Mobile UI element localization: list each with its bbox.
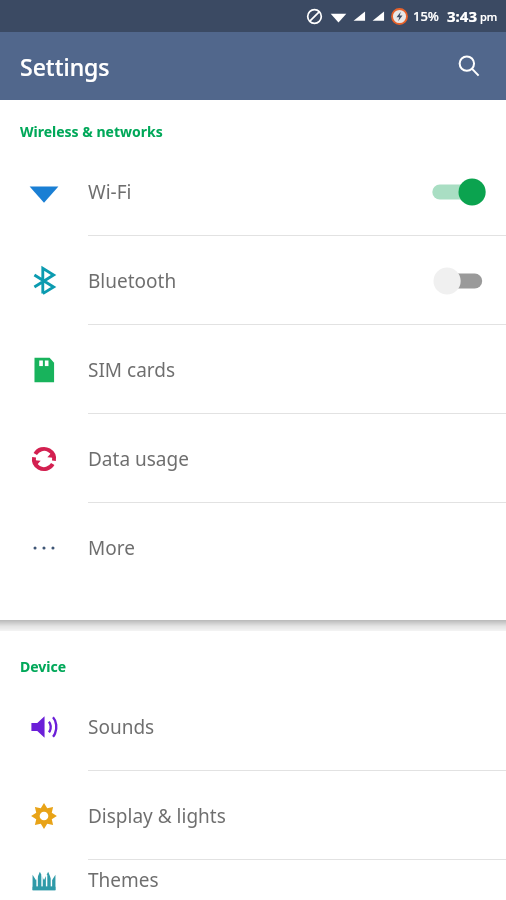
staticText: Sounds <box>88 714 155 740</box>
staticText: Data usage <box>88 446 189 472</box>
button[interactable]: Display & lights <box>0 771 506 860</box>
staticText: Settings <box>20 51 110 82</box>
staticText: 15% <box>413 7 439 25</box>
button[interactable]: On <box>430 175 488 209</box>
staticText: Display & lights <box>88 803 226 829</box>
button[interactable]: Search <box>446 43 492 89</box>
staticText: Wi-Fi <box>88 179 132 205</box>
button[interactable]: Themes <box>0 860 506 900</box>
staticText: 3:43 <box>447 6 477 26</box>
button[interactable]: Wi-Fi <box>0 147 506 236</box>
button[interactable]: SIM cards <box>0 325 506 414</box>
button[interactable]: Data usage <box>0 414 506 503</box>
button[interactable]: Off <box>430 264 488 298</box>
button[interactable]: More <box>0 503 506 592</box>
staticText: SIM cards <box>88 357 176 383</box>
staticText: Bluetooth <box>88 268 177 294</box>
button[interactable]: Bluetooth <box>0 236 506 325</box>
staticText: pm <box>480 9 498 24</box>
staticText: Themes <box>88 867 159 893</box>
staticText: Wireless & networks <box>20 122 163 141</box>
staticText: More <box>88 535 135 561</box>
staticText: Device <box>20 657 67 676</box>
button[interactable]: Sounds <box>0 682 506 771</box>
